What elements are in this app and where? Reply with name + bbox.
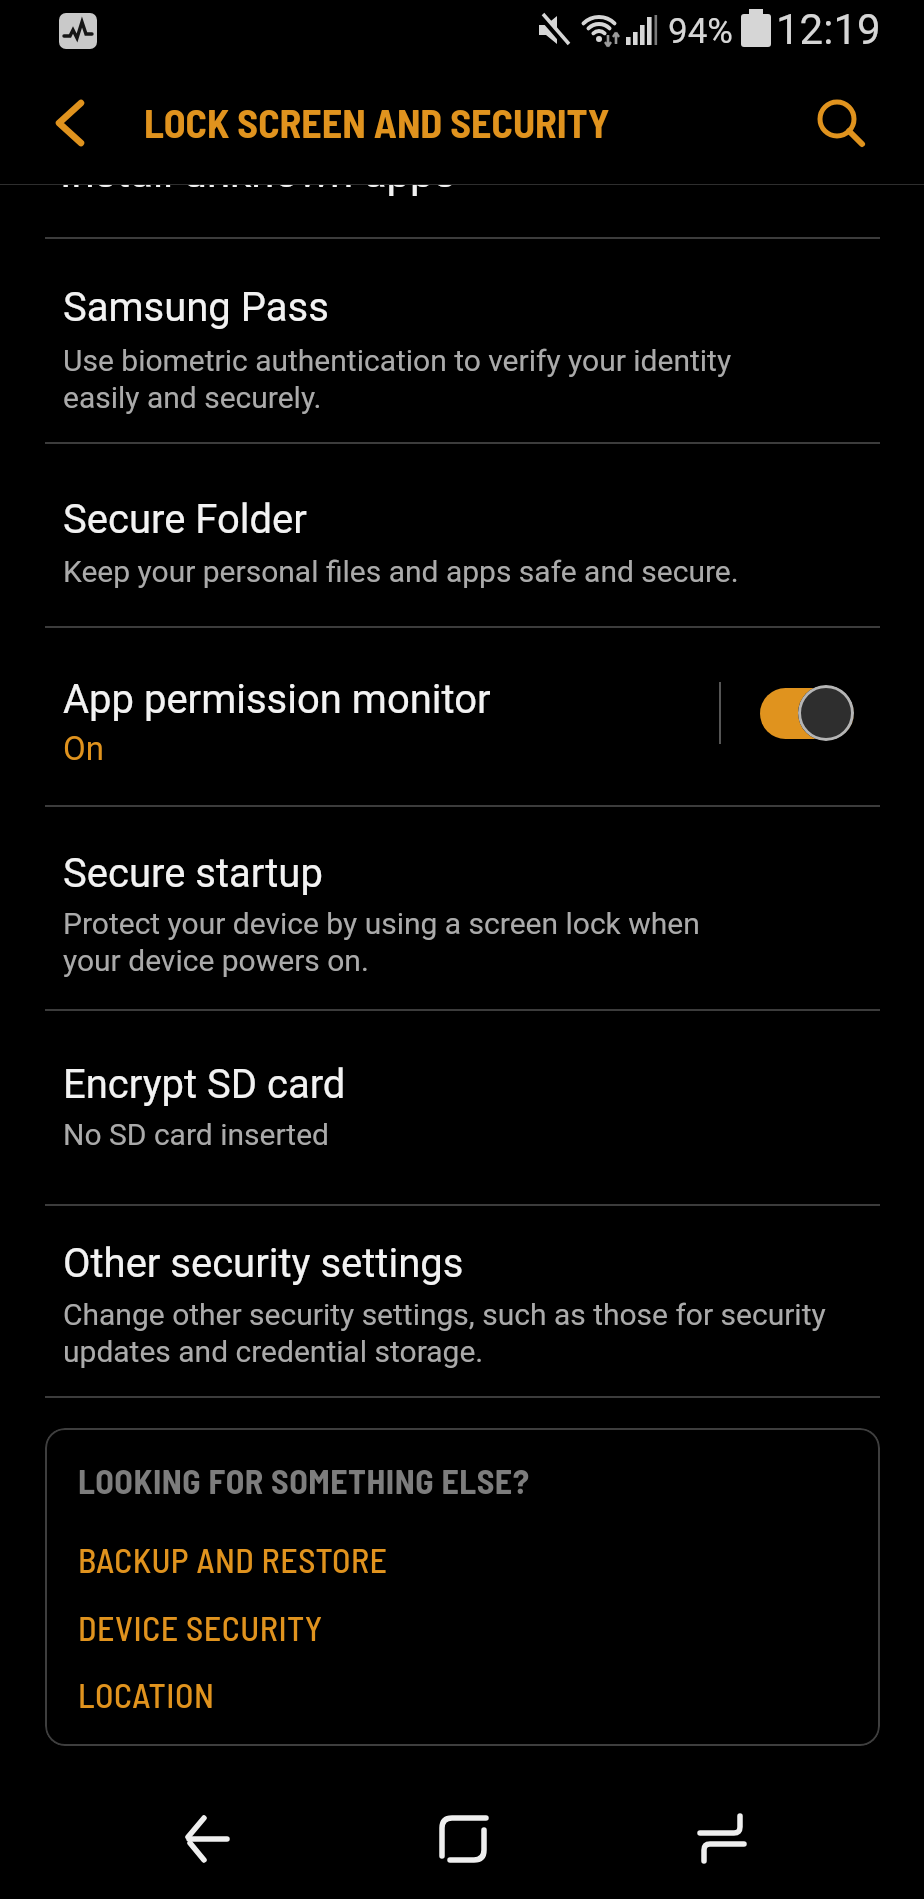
button[interactable] <box>0 1011 924 1204</box>
staticText: No SD card inserted <box>63 1117 329 1152</box>
button[interactable]: LOCATION <box>60 1665 320 1725</box>
staticText: Samsung Pass <box>63 284 329 331</box>
staticText: Protect your device by using a screen lo… <box>63 906 700 979</box>
staticText: Change other security settings, such as … <box>63 1297 826 1370</box>
staticText: Secure startup <box>63 850 323 897</box>
button[interactable] <box>760 688 854 739</box>
staticText: BACKUP AND RESTORE <box>78 1539 388 1580</box>
button[interactable] <box>404 1790 524 1890</box>
button[interactable] <box>0 444 924 626</box>
staticText: Keep your personal files and apps safe a… <box>63 554 739 589</box>
button[interactable] <box>30 90 100 156</box>
staticText: Other security settings <box>63 1240 464 1287</box>
button[interactable] <box>0 807 924 1009</box>
staticText: On <box>63 729 104 768</box>
staticText: Secure Folder <box>63 496 307 543</box>
staticText: DEVICE SECURITY <box>78 1607 323 1648</box>
button[interactable] <box>150 1790 270 1890</box>
staticText: 94% <box>668 11 733 52</box>
staticText: Install unknown apps <box>60 148 456 197</box>
button[interactable]: DEVICE SECURITY <box>60 1598 400 1658</box>
button[interactable] <box>0 1206 924 1396</box>
button[interactable]: BACKUP AND RESTORE <box>60 1530 460 1590</box>
staticText: LOCATION <box>78 1674 215 1715</box>
staticText: Use biometric authentication to verify y… <box>63 343 732 416</box>
staticText: Encrypt SD card <box>63 1061 346 1108</box>
button[interactable] <box>662 1790 782 1890</box>
staticText: 12:19 <box>776 5 881 54</box>
button[interactable] <box>0 239 924 442</box>
staticText: LOOKING FOR SOMETHING ELSE? <box>78 1460 530 1501</box>
button[interactable] <box>0 628 924 805</box>
button[interactable] <box>800 85 880 161</box>
staticText: App permission monitor <box>63 676 491 723</box>
staticText: LOCK SCREEN AND SECURITY <box>144 98 610 146</box>
